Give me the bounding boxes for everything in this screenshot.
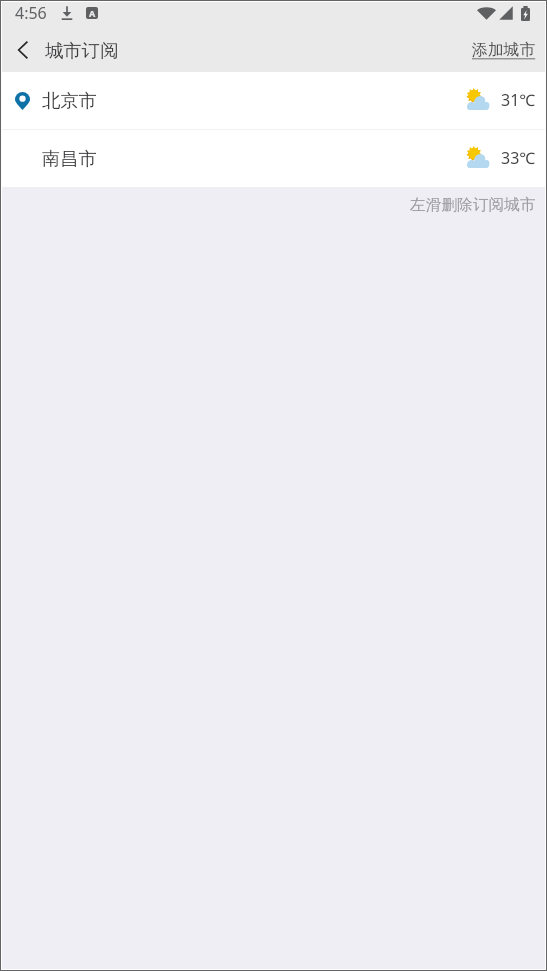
button[interactable]: 北京市 <box>2 72 545 129</box>
button[interactable]: 南昌市 <box>2 130 545 187</box>
staticText: 南昌市 <box>42 147 97 170</box>
staticText: 左滑删除订阅城市 <box>410 195 536 215</box>
staticText: 33℃ <box>501 147 536 169</box>
button[interactable]: 添加城市 <box>461 30 545 70</box>
staticText: A <box>89 7 96 19</box>
button[interactable]: Back <box>2 28 44 72</box>
staticText: 4:56 <box>15 2 47 24</box>
staticText: 北京市 <box>42 89 97 112</box>
staticText: 添加城市 <box>472 40 536 60</box>
staticText: 城市订阅 <box>45 39 119 62</box>
staticText: 31℃ <box>501 89 536 111</box>
